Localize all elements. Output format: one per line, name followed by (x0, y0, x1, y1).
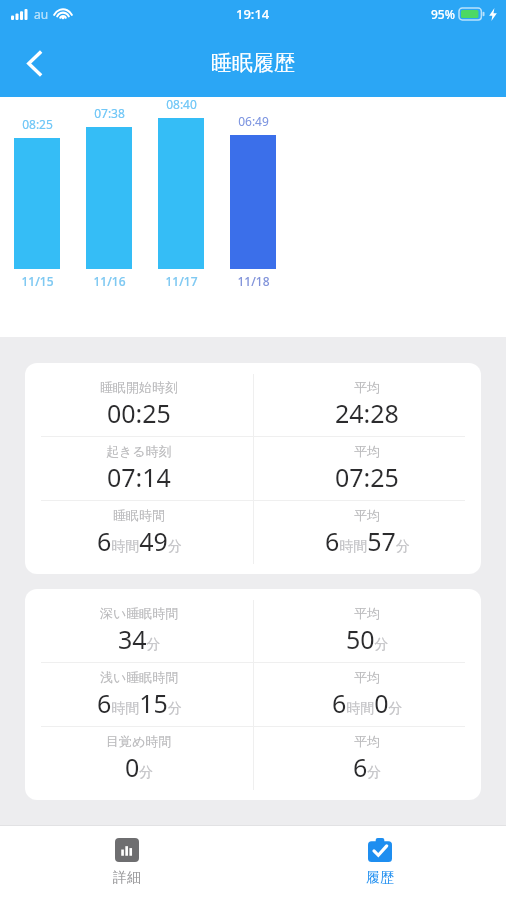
staticText: 08:25 (22, 116, 53, 132)
staticText: 睡眠時間 (113, 507, 165, 523)
staticText: 34分 (118, 622, 161, 656)
staticText: 07:14 (107, 460, 171, 494)
staticText: 平均 (354, 379, 380, 395)
staticText: 6時間15分 (97, 686, 182, 720)
staticText: 睡眠開始時刻 (100, 379, 178, 395)
staticText: 深い睡眠時間 (100, 605, 179, 621)
staticText: 6分 (353, 750, 382, 784)
staticText: 19:14 (236, 5, 270, 23)
staticText: 11/16 (93, 273, 126, 289)
staticText: 平均 (354, 443, 380, 459)
staticText: 95% (431, 6, 455, 22)
staticText: 詳細 (113, 869, 141, 887)
button[interactable]: 履歴 (253, 825, 506, 900)
staticText: 11/18 (237, 273, 270, 289)
staticText: au (34, 6, 49, 22)
staticText: 平均 (354, 507, 380, 523)
staticText: 目覚め時間 (106, 733, 172, 749)
staticText: 浅い睡眠時間 (100, 669, 179, 685)
staticText: 11/17 (165, 273, 198, 289)
staticText: 07:38 (94, 105, 125, 121)
staticText: 07:25 (335, 460, 399, 494)
staticText: 08:40 (166, 96, 197, 112)
staticText: 睡眠履歴 (211, 50, 295, 76)
staticText: 6時間57分 (325, 524, 410, 558)
staticText: 24:28 (335, 396, 399, 430)
staticText: 6時間0分 (332, 686, 403, 720)
button[interactable]: 詳細 (0, 825, 253, 900)
staticText: 0分 (125, 750, 154, 784)
staticText: 06:49 (238, 113, 269, 129)
staticText: 6時間49分 (97, 524, 182, 558)
staticText: 50分 (346, 622, 389, 656)
staticText: 00:25 (107, 396, 171, 430)
staticText: 履歴 (366, 869, 394, 887)
staticText: 11/15 (21, 273, 54, 289)
staticText: 平均 (354, 605, 380, 621)
button[interactable]: 戻る (10, 39, 58, 87)
staticText: 平均 (354, 669, 380, 685)
staticText: 起きる時刻 (106, 443, 172, 459)
staticText: 平均 (354, 733, 380, 749)
